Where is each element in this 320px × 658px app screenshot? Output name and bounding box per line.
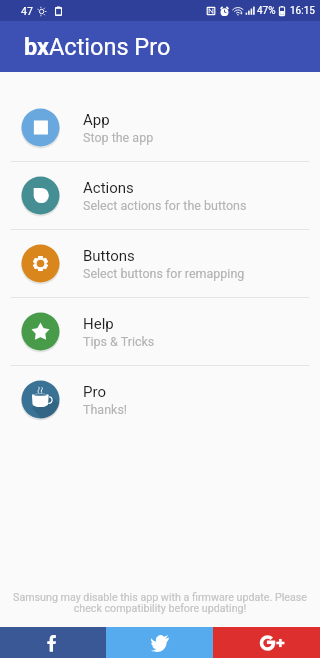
staticText: bxActions Pro [24, 33, 171, 61]
staticText: Actions [83, 179, 134, 197]
staticText: Tips & Tricks [83, 334, 155, 349]
staticText: Select buttons for remapping [83, 266, 245, 281]
staticText: Thanks! [83, 402, 128, 417]
button[interactable]: Actions [0, 162, 320, 229]
staticText: Help [83, 315, 114, 333]
staticText: Select actions for the buttons [83, 198, 247, 213]
staticText: Samsung may disable this app with a firm… [12, 591, 308, 614]
staticText: 16:15 [290, 5, 315, 17]
staticText: Stop the app [83, 130, 154, 145]
staticText: Buttons [83, 247, 135, 265]
staticText: 47 [21, 5, 33, 17]
button[interactable]: App [0, 94, 320, 161]
button[interactable]: Share on Facebook [0, 627, 106, 658]
staticText: Pro [83, 383, 106, 401]
button[interactable]: Pro [0, 366, 320, 433]
button[interactable]: Share on Google Plus [213, 627, 320, 658]
button[interactable]: Help [0, 298, 320, 365]
staticText: 47% [257, 5, 276, 17]
staticText: App [83, 111, 110, 129]
button[interactable]: Share on Twitter [106, 627, 213, 658]
button[interactable]: Buttons [0, 230, 320, 297]
